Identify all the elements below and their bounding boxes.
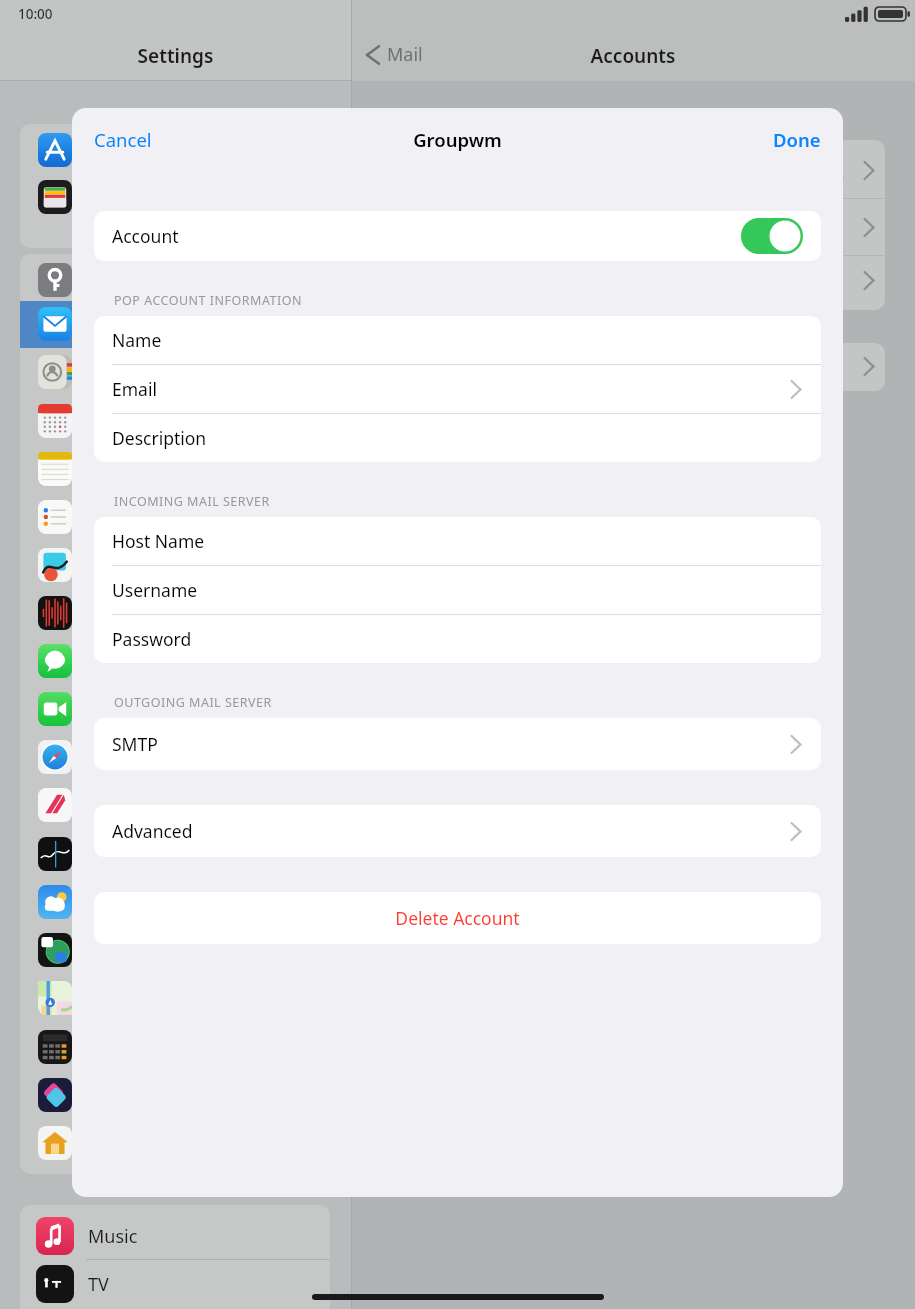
button[interactable] [38, 1126, 72, 1160]
button[interactable] [38, 740, 72, 774]
button[interactable] [38, 596, 72, 630]
staticText: Password [112, 627, 192, 651]
button[interactable] [38, 1078, 72, 1112]
button[interactable]: Description [94, 414, 821, 462]
staticText: Username [112, 578, 198, 602]
staticText: Account [112, 224, 179, 248]
button[interactable] [38, 981, 72, 1015]
staticText: INCOMING MAIL SERVER [114, 493, 270, 510]
button[interactable] [38, 307, 72, 341]
button[interactable]: Email [94, 365, 821, 414]
button[interactable] [38, 644, 72, 678]
staticText: Advanced [112, 819, 193, 843]
staticText: Description [112, 426, 207, 450]
button[interactable]: Cancel [80, 121, 166, 158]
button[interactable] [38, 263, 72, 297]
button[interactable]: Done [759, 121, 835, 158]
staticText: POP ACCOUNT INFORMATION [114, 292, 302, 309]
staticText: Accounts [351, 43, 915, 69]
button[interactable] [38, 500, 72, 534]
staticText: SMTP [112, 732, 158, 756]
button[interactable] [38, 1030, 72, 1064]
staticText: TV [88, 1272, 109, 1297]
button[interactable]: Password [94, 615, 821, 663]
button[interactable] [38, 837, 72, 871]
button[interactable]: Name [94, 316, 821, 365]
button[interactable] [38, 885, 72, 919]
button[interactable] [38, 404, 72, 438]
button[interactable]: Advanced [94, 805, 821, 857]
button[interactable]: Host Name [94, 517, 821, 566]
button[interactable] [38, 355, 72, 389]
staticText: Host Name [112, 529, 205, 553]
staticText: e… [824, 162, 845, 182]
button[interactable] [38, 788, 72, 822]
button[interactable] [38, 548, 72, 582]
staticText: Music [88, 1224, 138, 1249]
button[interactable]: TV [36, 1260, 330, 1308]
button[interactable] [38, 452, 72, 486]
button[interactable]: SMTP [94, 718, 821, 770]
staticText: Email [112, 377, 157, 401]
staticText: Mail [387, 42, 423, 67]
staticText: Groupwm [72, 127, 843, 152]
button[interactable]: Wallet [38, 180, 72, 214]
staticText: 10:00 [18, 5, 53, 23]
button[interactable] [38, 933, 72, 967]
staticText: Name [112, 328, 162, 352]
button[interactable]: Username [94, 566, 821, 615]
button[interactable]: App Store [38, 133, 72, 167]
staticText: Settings [0, 43, 351, 69]
staticText: Done [773, 127, 821, 152]
staticText: Cancel [94, 127, 152, 152]
button[interactable]: Account [94, 211, 821, 261]
button[interactable] [38, 692, 72, 726]
staticText: OUTGOING MAIL SERVER [114, 694, 272, 711]
button[interactable]: Mail [366, 42, 423, 67]
button[interactable]: Music [36, 1212, 330, 1260]
button[interactable]: Delete Account [94, 892, 821, 944]
staticText: Delete Account [112, 906, 803, 930]
